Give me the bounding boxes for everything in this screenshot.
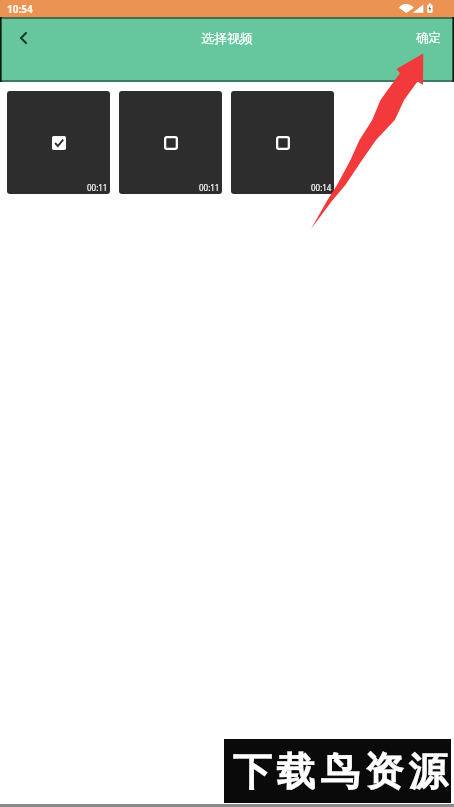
button[interactable]: Deselect bbox=[52, 136, 66, 150]
button[interactable]: Select bbox=[164, 136, 178, 150]
staticText: 下载鸟资源 bbox=[230, 747, 450, 796]
staticText: 10:54 bbox=[7, 2, 33, 16]
button[interactable]: Select bbox=[276, 136, 290, 150]
button[interactable]: 确定 bbox=[403, 19, 454, 53]
staticText: 00:11 bbox=[87, 182, 108, 193]
staticText: 00:11 bbox=[199, 182, 220, 193]
button[interactable]: Video 00:14 bbox=[231, 91, 334, 194]
button[interactable]: Video 00:11 bbox=[119, 91, 222, 194]
staticText: 00:14 bbox=[311, 182, 332, 193]
button[interactable]: Video 00:11, selected bbox=[7, 91, 110, 194]
staticText: 选择视频 bbox=[201, 30, 253, 46]
staticText: 确定 bbox=[416, 30, 441, 46]
button[interactable]: Back bbox=[4, 17, 42, 55]
